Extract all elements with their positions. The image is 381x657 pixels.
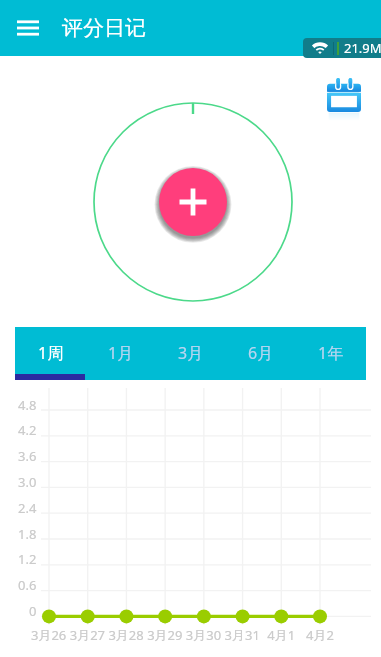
button[interactable]: Add entry xyxy=(159,168,227,236)
button[interactable]: 1月 xyxy=(86,327,156,374)
button[interactable]: 6月 xyxy=(226,327,296,374)
staticText: 6月 xyxy=(248,342,274,364)
staticText: 1周 xyxy=(38,342,64,364)
staticText: 评分日记 xyxy=(62,15,146,41)
button[interactable]: Menu xyxy=(0,0,56,56)
button[interactable]: 1年 xyxy=(296,327,366,374)
button[interactable]: 3月 xyxy=(156,327,226,374)
button[interactable]: 1周 xyxy=(15,327,86,374)
staticText: 1年 xyxy=(318,342,344,364)
staticText: 21.9M xyxy=(344,39,381,57)
staticText: 1月 xyxy=(108,342,134,364)
button[interactable]: Calendar xyxy=(327,78,361,112)
staticText: 3月 xyxy=(178,342,204,364)
